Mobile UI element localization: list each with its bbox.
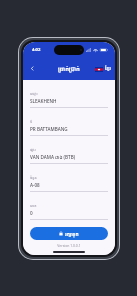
staticText: លេខ (30, 203, 37, 208)
staticText: Version 1.0.0.1 (30, 243, 108, 248)
staticText: ឈ្មោះ (30, 91, 38, 96)
staticText: ខ្មែរ (105, 66, 111, 72)
staticText: A-08 (30, 182, 40, 188)
staticText: ទី (30, 119, 33, 124)
staticText: ផ្សារ (30, 147, 36, 152)
staticText: PR BATTAMBANG (30, 126, 68, 132)
staticText: VAN DAMA ជាង (BTB) (30, 154, 76, 160)
staticText: SLEAKHENH (30, 98, 57, 104)
button[interactable]: លេខ (30, 199, 108, 227)
staticText: រក្សាទុក (65, 231, 79, 237)
button[interactable]: ឈ្មោះ (30, 87, 108, 115)
button[interactable]: រក្សាទុក (30, 227, 108, 240)
button[interactable]: ចំនួន (30, 171, 108, 199)
staticText: 4:02 (32, 47, 41, 53)
button[interactable]: ផ្សារ (30, 143, 108, 171)
staticText: 0 (30, 210, 33, 216)
staticText: ចំនួន (30, 175, 37, 180)
button[interactable]: Language (95, 66, 111, 72)
button[interactable]: Back (26, 62, 39, 75)
staticText: ព្រាក់ប្រាក់ (58, 65, 80, 73)
button[interactable]: ទី (30, 115, 108, 143)
